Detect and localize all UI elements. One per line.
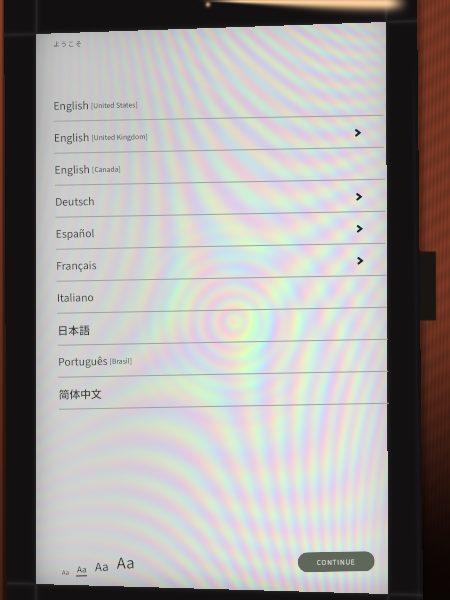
button[interactable]: English bbox=[33, 148, 385, 186]
staticText: English bbox=[54, 129, 90, 147]
staticText: [Brasil] bbox=[108, 355, 132, 367]
staticText: [United Kingdom] bbox=[90, 131, 148, 143]
button[interactable]: 简体中文 bbox=[37, 372, 389, 410]
staticText: Português bbox=[58, 353, 108, 371]
button[interactable]: English bbox=[32, 84, 384, 122]
staticText: Français bbox=[56, 257, 97, 275]
other: Open English options bbox=[353, 128, 362, 137]
button[interactable]: Italiano bbox=[36, 276, 387, 314]
staticText: [United States] bbox=[89, 99, 138, 111]
button[interactable]: Aa bbox=[115, 551, 135, 577]
staticText: ようこそ bbox=[53, 38, 83, 49]
button[interactable]: Español bbox=[34, 212, 386, 250]
staticText: [Canada] bbox=[90, 164, 122, 175]
other: Open Español options bbox=[355, 224, 364, 233]
staticText: CONTINUE bbox=[317, 556, 356, 568]
button[interactable]: Français bbox=[35, 244, 386, 282]
other: Open Deutsch options bbox=[354, 192, 363, 201]
button[interactable]: 日本語 bbox=[36, 308, 388, 346]
staticText: English bbox=[54, 161, 91, 179]
button[interactable]: Português bbox=[37, 340, 388, 378]
staticText: 简体中文 bbox=[58, 385, 103, 402]
staticText: Deutsch bbox=[55, 193, 95, 211]
staticText: 日本語 bbox=[57, 321, 91, 338]
staticText: Aa bbox=[62, 568, 70, 577]
staticText: Aa bbox=[95, 558, 109, 576]
button[interactable]: Aa bbox=[62, 567, 76, 578]
staticText: English bbox=[53, 97, 89, 115]
staticText: Aa bbox=[77, 563, 87, 576]
button[interactable]: CONTINUE bbox=[298, 551, 375, 572]
button[interactable]: Deutsch bbox=[34, 180, 385, 218]
button[interactable]: Aa bbox=[94, 558, 116, 577]
other: Open Français options bbox=[355, 256, 364, 265]
staticText: Aa bbox=[116, 551, 135, 576]
button[interactable]: English bbox=[33, 116, 384, 154]
staticText: Italiano bbox=[57, 289, 94, 307]
staticText: Español bbox=[56, 225, 95, 243]
button[interactable]: Aa bbox=[76, 563, 94, 577]
